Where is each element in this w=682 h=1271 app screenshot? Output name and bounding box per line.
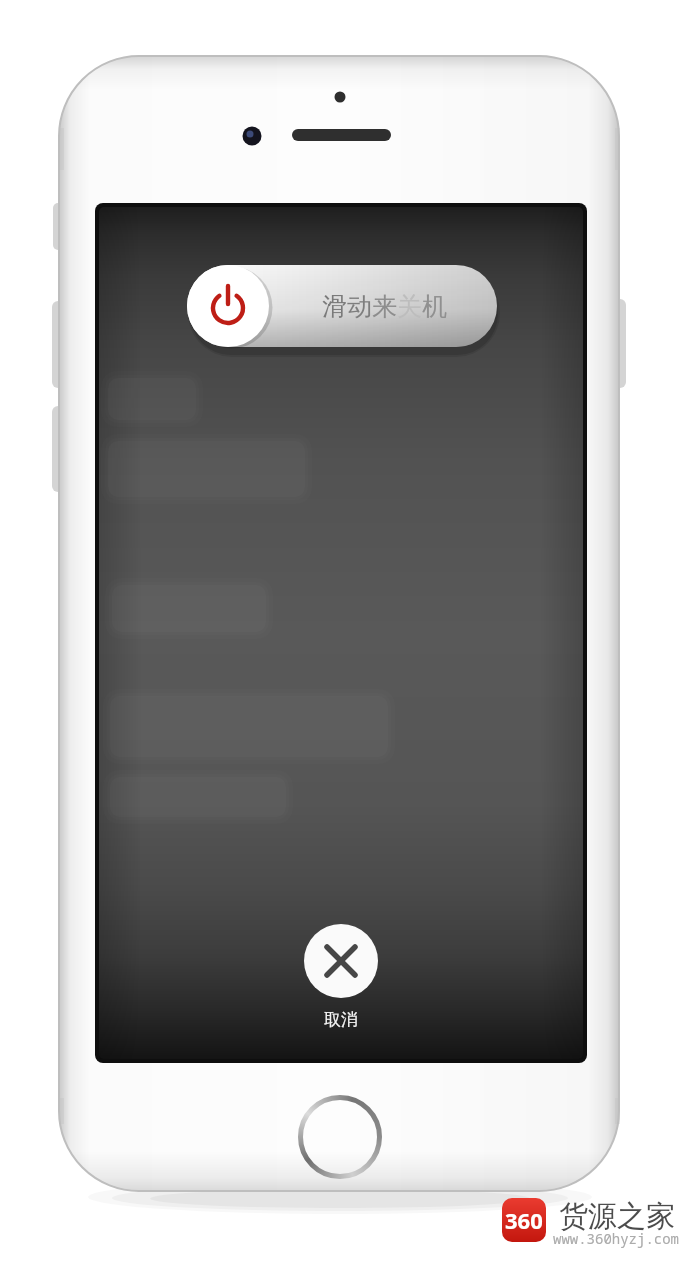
button[interactable] [304, 924, 378, 998]
staticText: 取消 [324, 1009, 358, 1030]
button[interactable] [187, 265, 269, 347]
staticText: 滑动来关机 [322, 291, 447, 322]
staticText: 360 [505, 1205, 543, 1235]
button[interactable]: 滑动来关机 [267, 286, 501, 326]
staticText: 货源之家 [559, 1198, 675, 1234]
button[interactable]: 取消 [301, 1004, 381, 1034]
staticText: www.360hyzj.com [553, 1229, 679, 1248]
button[interactable] [302, 1099, 378, 1175]
